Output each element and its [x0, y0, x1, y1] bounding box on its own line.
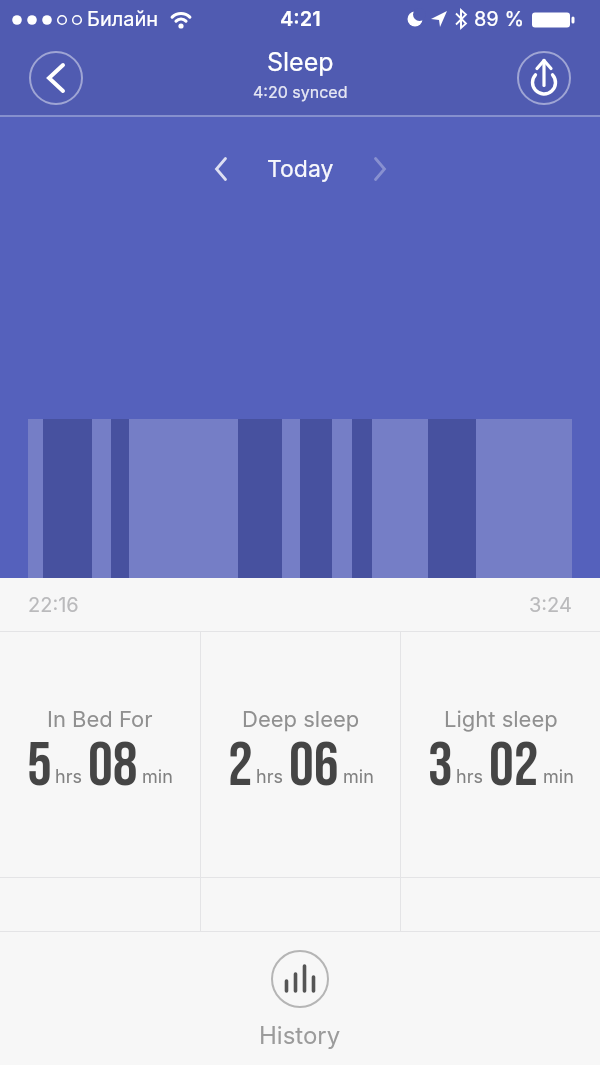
button[interactable]: Light sleep [401, 632, 600, 877]
staticText: 06 [289, 729, 339, 803]
button[interactable]: Deep sleep [201, 632, 400, 877]
staticText: hrs [256, 766, 283, 788]
staticText: hrs [55, 766, 82, 788]
staticText: Sleep [267, 47, 334, 77]
staticText: min [142, 766, 173, 788]
staticText: 08 [88, 729, 138, 803]
staticText: min [343, 766, 374, 788]
button[interactable]: Today [210, 147, 391, 191]
staticText: 02 [489, 729, 539, 803]
button[interactable] [29, 51, 83, 105]
staticText: 2 [228, 729, 253, 803]
staticText: 3:24 [529, 593, 572, 617]
button[interactable]: In Bed For [0, 632, 200, 877]
staticText: History [259, 1021, 341, 1050]
staticText: Light sleep [444, 706, 558, 733]
staticText: Deep sleep [242, 706, 360, 733]
staticText: min [543, 766, 574, 788]
staticText: 89 % [474, 7, 525, 31]
staticText: 3 [428, 729, 453, 803]
staticText: 4:20 synced [253, 82, 348, 101]
staticText: hrs [456, 766, 483, 788]
staticText: Билайн [87, 7, 159, 31]
staticText: 4:21 [280, 7, 321, 31]
staticText: In Bed For [47, 706, 153, 733]
staticText: 22:16 [28, 593, 79, 617]
button[interactable] [271, 950, 329, 1008]
staticText: Today [267, 155, 334, 183]
staticText: 5 [27, 729, 52, 803]
button[interactable] [517, 51, 571, 105]
